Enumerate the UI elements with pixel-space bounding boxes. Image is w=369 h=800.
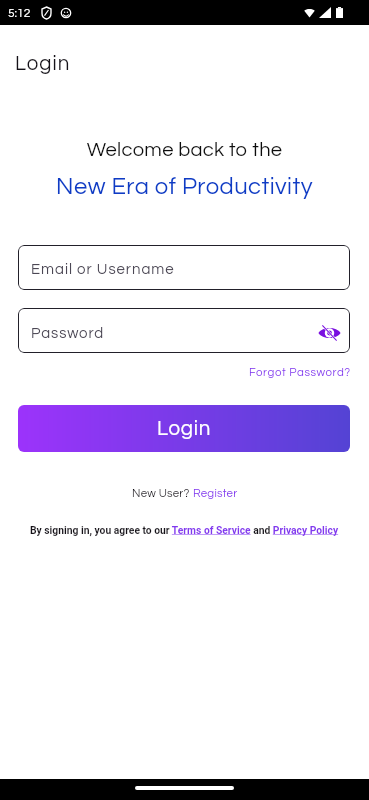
staticText: Password xyxy=(31,326,105,341)
button[interactable]: Forgot Password? xyxy=(249,367,351,379)
button[interactable]: Password xyxy=(18,308,350,353)
staticText: New User? xyxy=(132,488,193,500)
staticText: Login xyxy=(157,418,212,439)
staticText: Email or Username xyxy=(31,262,175,277)
button[interactable]: Email or Username xyxy=(18,245,350,290)
staticText: By signing in, you agree to our Terms of… xyxy=(30,524,339,536)
staticText: 5:12 xyxy=(8,7,31,19)
staticText: New Era of Productivity xyxy=(0,174,369,199)
button[interactable]: Login xyxy=(18,405,350,452)
staticText: Welcome back to the xyxy=(0,139,369,160)
staticText: Login xyxy=(15,53,71,74)
staticText: Register xyxy=(193,488,238,500)
button[interactable]: New User? xyxy=(132,488,238,500)
button[interactable]: Show password xyxy=(318,324,341,342)
